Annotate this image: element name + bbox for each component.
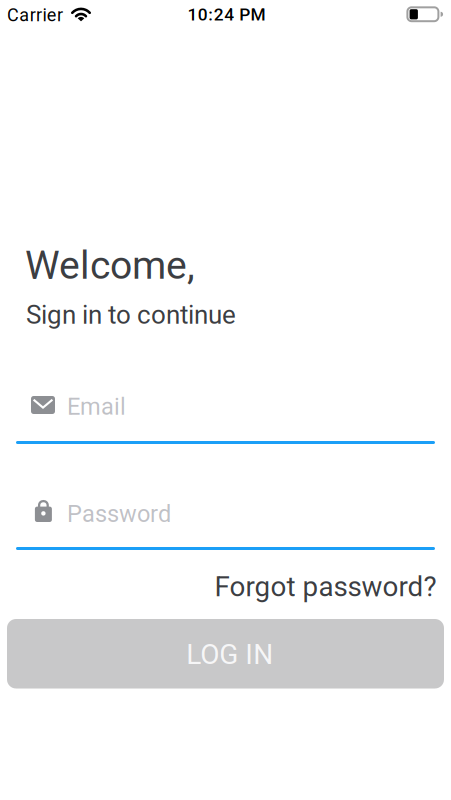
staticText: 10:24 PM: [187, 4, 266, 25]
staticText: Carrier: [7, 4, 63, 26]
staticText: Forgot password?: [214, 570, 436, 603]
button[interactable]: Email: [0, 382, 451, 444]
button[interactable]: Forgot password?: [214, 570, 436, 603]
staticText: Sign in to continue: [26, 300, 236, 330]
staticText: LOG IN: [186, 638, 273, 671]
staticText: Email: [67, 393, 126, 421]
staticText: Welcome,: [25, 242, 195, 288]
button[interactable]: LOG IN: [7, 619, 444, 688]
staticText: Password: [67, 500, 171, 528]
button[interactable]: Password: [0, 488, 451, 550]
